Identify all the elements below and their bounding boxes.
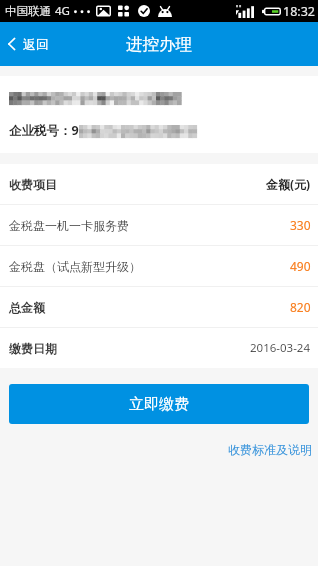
staticText: 立即缴费	[129, 395, 189, 414]
staticText: 4G	[55, 3, 70, 19]
staticText: 缴费日期	[9, 341, 57, 356]
staticText: 金额(元)	[266, 176, 311, 192]
staticText: 收费标准及说明	[228, 442, 312, 457]
staticText: 2016-03-24	[250, 340, 311, 356]
staticText: 总金额	[9, 300, 45, 315]
staticText: 返回	[23, 36, 49, 52]
staticText: 企业税号：9	[9, 122, 79, 139]
staticText: 收费项目	[9, 177, 57, 192]
staticText: 金税盘（试点新型升级）	[9, 259, 141, 274]
staticText: 中国联通	[5, 4, 51, 18]
button[interactable]: 立即缴费	[9, 384, 309, 424]
staticText: 金税盘一机一卡服务费	[9, 218, 129, 233]
staticText: 490	[290, 258, 311, 274]
staticText: 820	[290, 299, 311, 315]
staticText: 进控办理	[126, 34, 192, 55]
staticText: 18:32	[283, 3, 315, 20]
staticText: 330	[290, 217, 311, 233]
button[interactable]: 返回	[0, 22, 318, 66]
button[interactable]: 收费标准及说明	[220, 439, 318, 460]
